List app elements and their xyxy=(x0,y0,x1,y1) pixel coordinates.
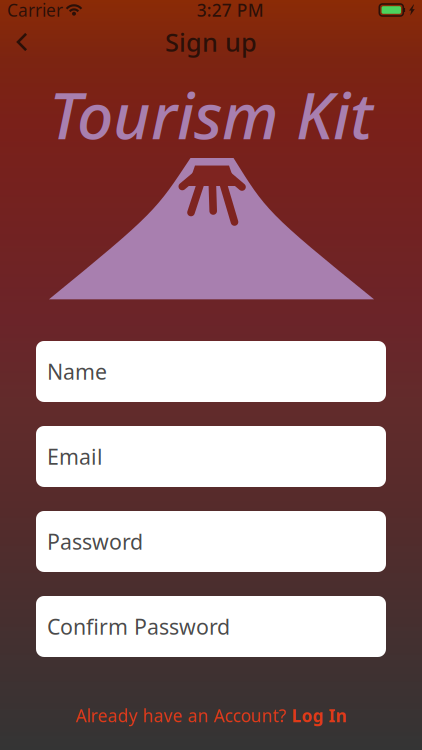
staticText: Log In xyxy=(291,704,346,727)
staticText: Already have an Account? xyxy=(75,704,286,727)
staticText: Confirm Password xyxy=(47,612,230,641)
button[interactable]: Already have an Account? xyxy=(75,704,346,727)
button[interactable]: Name xyxy=(36,341,386,402)
button[interactable]: Email xyxy=(36,426,386,487)
staticText: Password xyxy=(47,527,143,556)
staticText: Tourism Kit xyxy=(49,72,373,157)
button[interactable]: Back xyxy=(0,20,44,64)
staticText: Email xyxy=(47,442,103,471)
button[interactable]: Password xyxy=(36,511,386,572)
button[interactable]: Confirm Password xyxy=(36,596,386,657)
staticText: Sign up xyxy=(165,25,257,59)
staticText: 3:27 PM xyxy=(197,0,264,21)
staticText: Name xyxy=(47,357,107,386)
staticText: Carrier xyxy=(7,0,63,21)
